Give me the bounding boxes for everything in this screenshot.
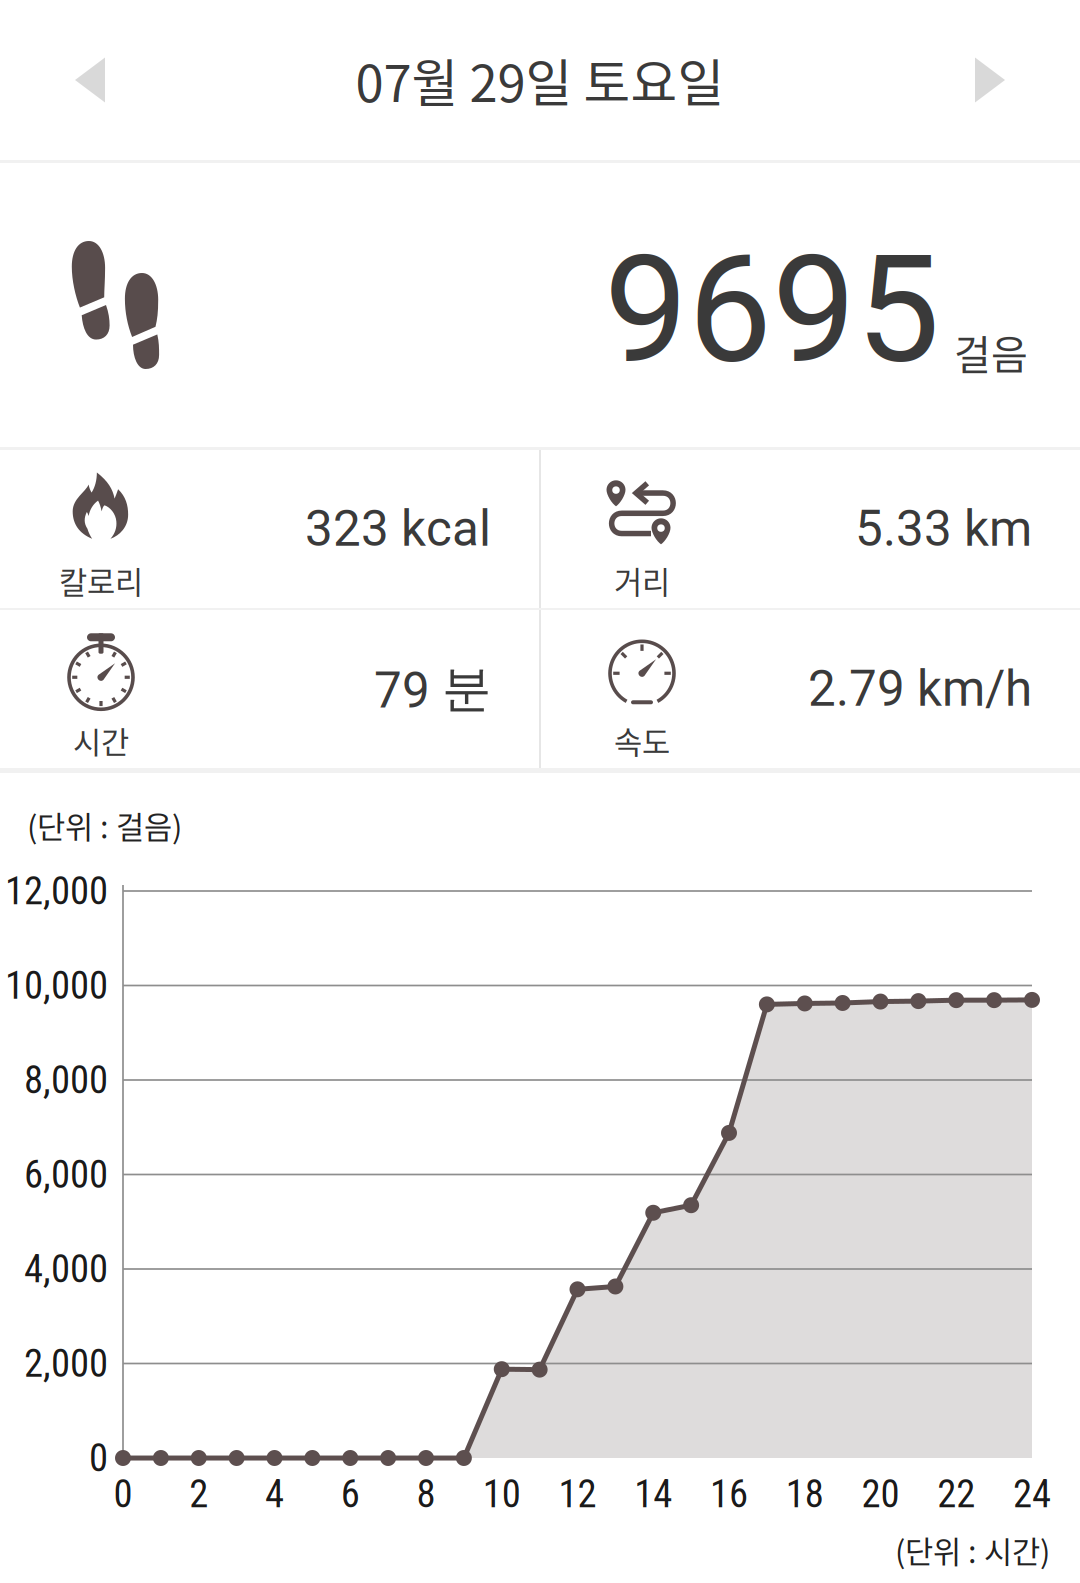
button[interactable]: 칼로리 — [0, 450, 539, 608]
button[interactable]: Next day — [900, 0, 1080, 160]
staticText: 4 — [265, 1471, 284, 1517]
staticText: 0 — [89, 1435, 108, 1481]
staticText: 8,000 — [24, 1057, 108, 1103]
staticText: 8 — [416, 1471, 435, 1517]
staticText: (단위 : 걸음) — [27, 803, 182, 847]
staticText: 4,000 — [24, 1246, 108, 1292]
staticText: 18 — [786, 1471, 824, 1517]
button[interactable]: 거리 — [541, 450, 1080, 608]
staticText: 2,000 — [24, 1341, 108, 1386]
staticText: 24 — [1013, 1471, 1051, 1517]
staticText: 79 분 — [374, 658, 491, 720]
staticText: 6,000 — [24, 1152, 108, 1197]
staticText: 10,000 — [5, 963, 108, 1008]
button[interactable]: 속도 — [541, 610, 1080, 768]
staticText: 12,000 — [5, 868, 108, 914]
staticText: 22 — [937, 1471, 975, 1517]
staticText: 0 — [113, 1471, 132, 1517]
staticText: 2.79 km/h — [808, 660, 1032, 718]
staticText: 12 — [558, 1471, 596, 1517]
staticText: 5.33 km — [855, 500, 1032, 558]
staticText: 323 kcal — [305, 500, 491, 558]
staticText: 07월 29일 토요일 — [355, 43, 724, 117]
staticText: 6 — [341, 1471, 360, 1517]
button[interactable]: 시간 — [0, 610, 539, 768]
staticText: 걸음 — [954, 323, 1028, 381]
staticText: 칼로리 — [59, 558, 143, 603]
staticText: 2 — [189, 1471, 208, 1517]
staticText: 시간 — [73, 718, 129, 763]
staticText: 9695 — [604, 222, 940, 397]
staticText: 20 — [861, 1471, 899, 1517]
staticText: (단위 : 시간) — [895, 1528, 1050, 1572]
staticText: 10 — [483, 1471, 521, 1517]
staticText: 거리 — [614, 558, 670, 603]
staticText: 속도 — [614, 718, 670, 763]
button[interactable]: Previous day — [0, 0, 180, 160]
staticText: 14 — [634, 1471, 672, 1517]
staticText: 16 — [710, 1471, 748, 1517]
